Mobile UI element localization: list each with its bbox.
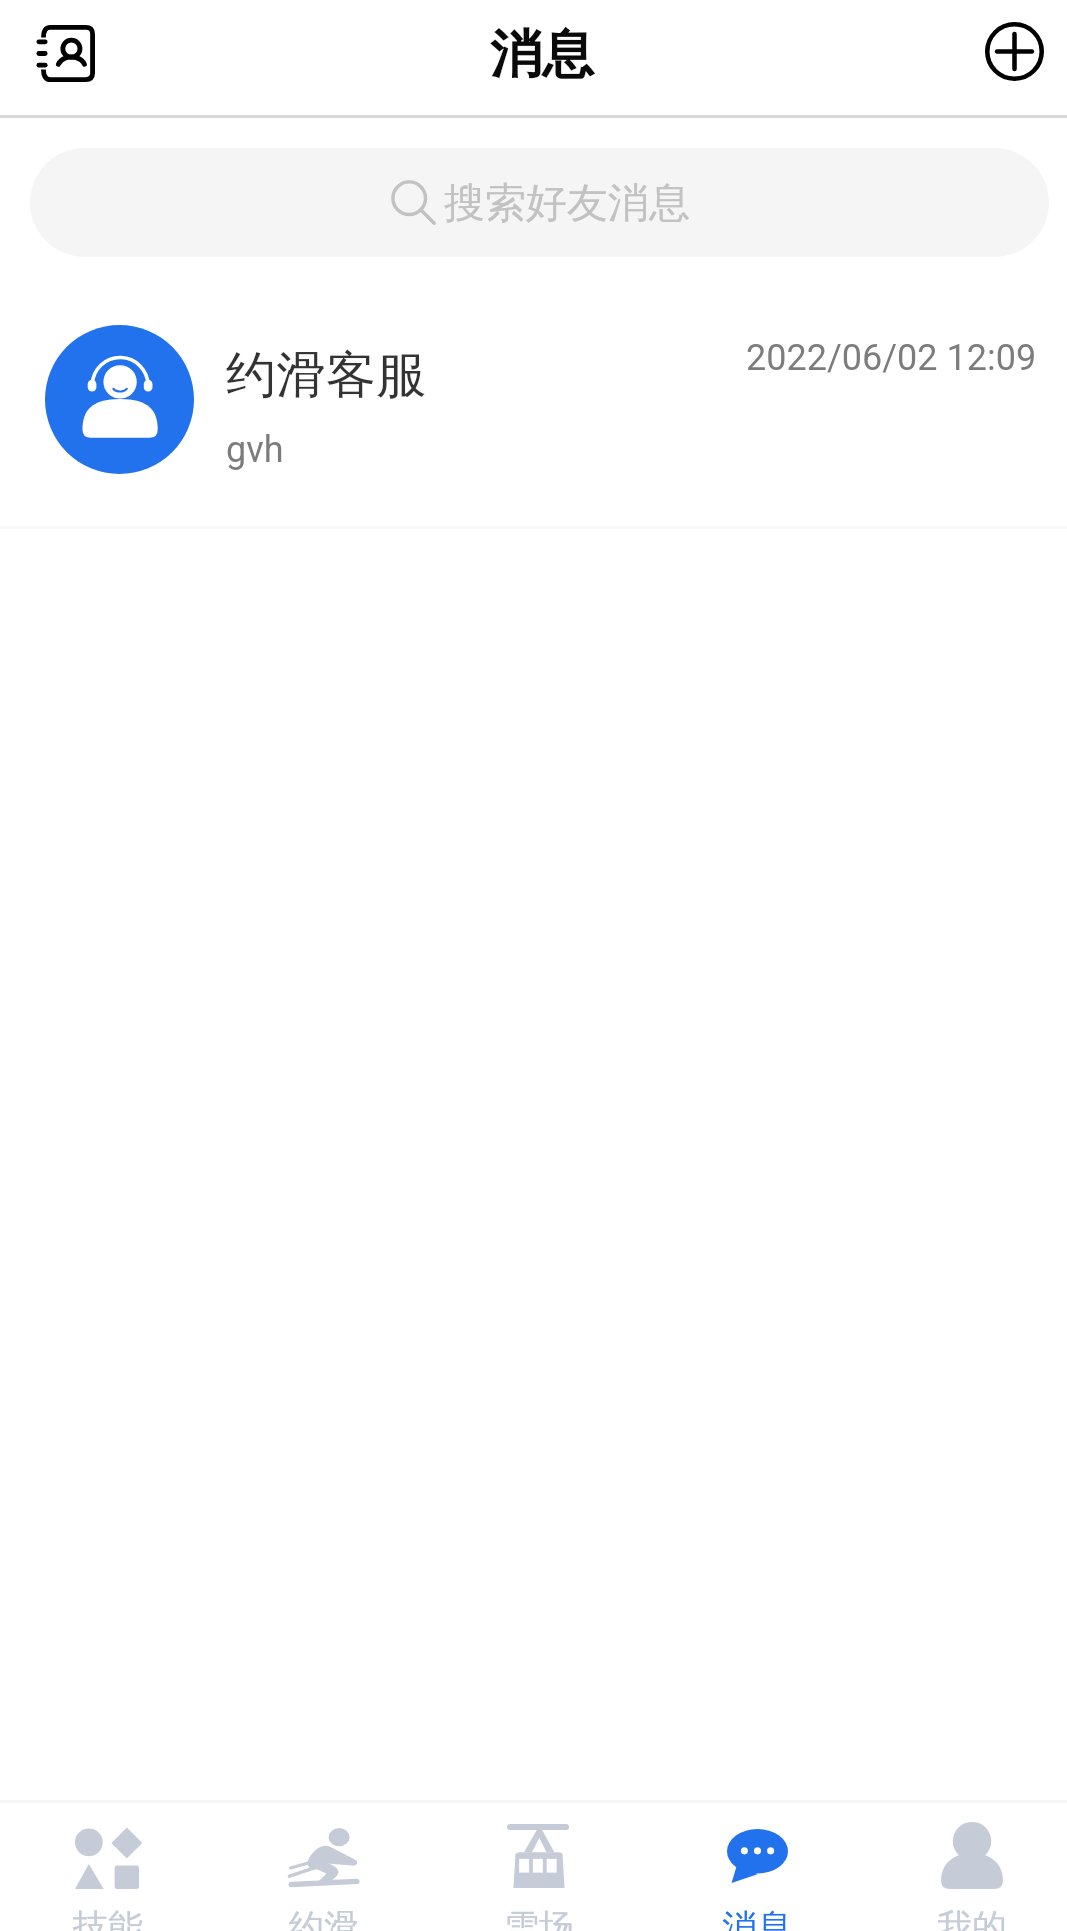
button[interactable]: 约滑 <box>216 1803 432 1931</box>
button[interactable]: 技能 <box>0 1803 216 1931</box>
staticText: gvh <box>226 429 284 471</box>
button[interactable]: 消息 <box>649 1803 865 1931</box>
staticText: 雪场 <box>504 1905 574 1931</box>
staticText: 消息 <box>490 22 594 88</box>
staticText: 约滑 <box>289 1905 359 1931</box>
staticText: 技能 <box>73 1905 143 1931</box>
button[interactable]: 我的 <box>864 1803 1067 1931</box>
button[interactable]: 约滑客服 <box>0 257 1067 529</box>
button[interactable]: Add <box>959 0 1067 106</box>
button[interactable]: 搜索好友消息 <box>30 148 1049 257</box>
staticText: 搜索好友消息 <box>444 178 690 230</box>
staticText: 2022/06/02 12:09 <box>746 337 1037 379</box>
staticText: 我的 <box>937 1905 1007 1931</box>
button[interactable]: 雪场 <box>431 1803 647 1931</box>
button[interactable]: Contacts <box>10 0 120 108</box>
staticText: 消息 <box>722 1905 792 1931</box>
staticText: 约滑客服 <box>226 344 426 407</box>
